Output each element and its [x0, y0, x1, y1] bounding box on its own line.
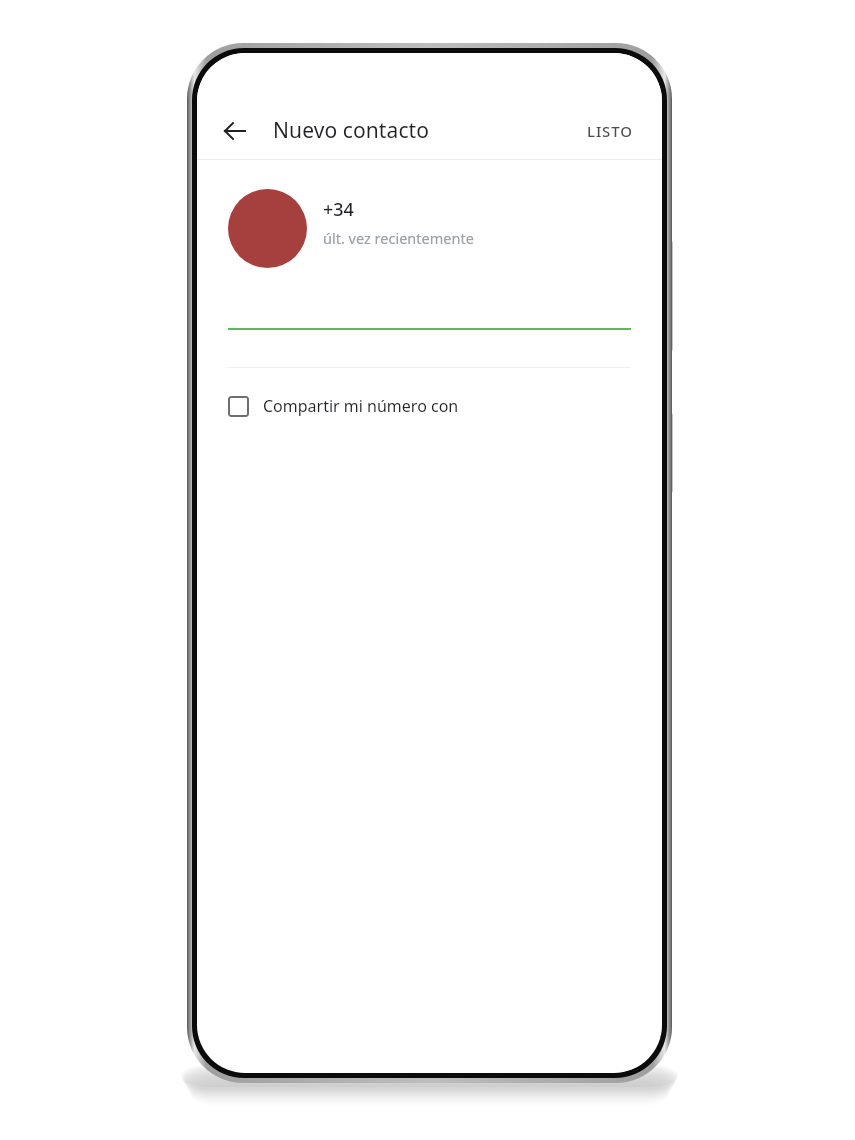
button[interactable]: +34: [197, 160, 662, 276]
button[interactable]: [197, 292, 662, 330]
button[interactable]: Compartir mi número con: [197, 389, 662, 423]
button[interactable]: LISTO: [573, 111, 647, 151]
button[interactable]: Atrás: [211, 107, 259, 155]
staticText: Compartir mi número con: [263, 395, 459, 417]
staticText: LISTO: [587, 121, 633, 141]
staticText: últ. vez recientemente: [323, 228, 474, 248]
staticText: +34: [323, 197, 354, 222]
staticText: Nuevo contacto: [273, 116, 430, 145]
